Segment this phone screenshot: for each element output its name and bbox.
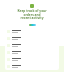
button[interactable] [7, 49, 57, 56]
staticText: Keep track of your orders and recent act… [4, 9, 60, 20]
button[interactable] [7, 35, 57, 42]
button[interactable] [7, 63, 57, 70]
button[interactable] [7, 42, 57, 49]
button[interactable] [7, 56, 57, 63]
button[interactable] [7, 28, 57, 35]
